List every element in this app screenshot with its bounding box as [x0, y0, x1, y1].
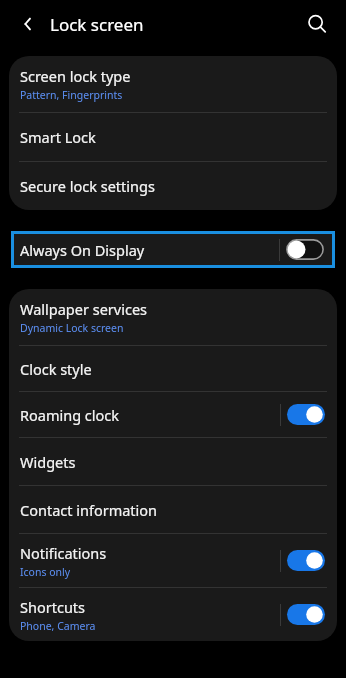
button[interactable]: Notifications: [9, 534, 337, 587]
button[interactable]: Smart Lock: [9, 113, 337, 161]
button[interactable]: On: [287, 550, 325, 571]
button[interactable]: Always On Display: [11, 231, 335, 268]
staticText: Contact information: [20, 500, 158, 520]
button[interactable]: Widgets: [9, 438, 337, 485]
staticText: Wallpaper services: [20, 299, 148, 319]
button[interactable]: Screen lock type: [9, 56, 337, 112]
staticText: Screen lock type: [20, 66, 131, 86]
button[interactable]: Off: [286, 239, 324, 260]
staticText: Icons only: [20, 565, 71, 579]
staticText: Notifications: [20, 543, 107, 563]
staticText: Phone, Camera: [20, 619, 96, 633]
button[interactable]: On: [287, 604, 325, 625]
staticText: Smart Lock: [20, 127, 96, 147]
button[interactable]: Shortcuts: [9, 588, 337, 641]
staticText: Always On Display: [20, 240, 279, 260]
staticText: Widgets: [20, 452, 76, 472]
button[interactable]: Roaming clock: [9, 392, 337, 437]
button[interactable]: Search: [298, 5, 336, 43]
button[interactable]: Secure lock settings: [9, 162, 337, 210]
button[interactable]: Back: [10, 6, 46, 42]
staticText: Shortcuts: [20, 597, 86, 617]
button[interactable]: On: [287, 404, 325, 425]
staticText: Lock screen: [50, 13, 144, 36]
staticText: Secure lock settings: [20, 176, 155, 196]
staticText: Pattern, Fingerprints: [20, 88, 123, 102]
staticText: Roaming clock: [20, 405, 120, 425]
staticText: Clock style: [20, 359, 92, 379]
button[interactable]: Wallpaper services: [9, 289, 337, 345]
button[interactable]: Clock style: [9, 346, 337, 391]
button[interactable]: Contact information: [9, 486, 337, 533]
staticText: Dynamic Lock screen: [20, 321, 124, 335]
